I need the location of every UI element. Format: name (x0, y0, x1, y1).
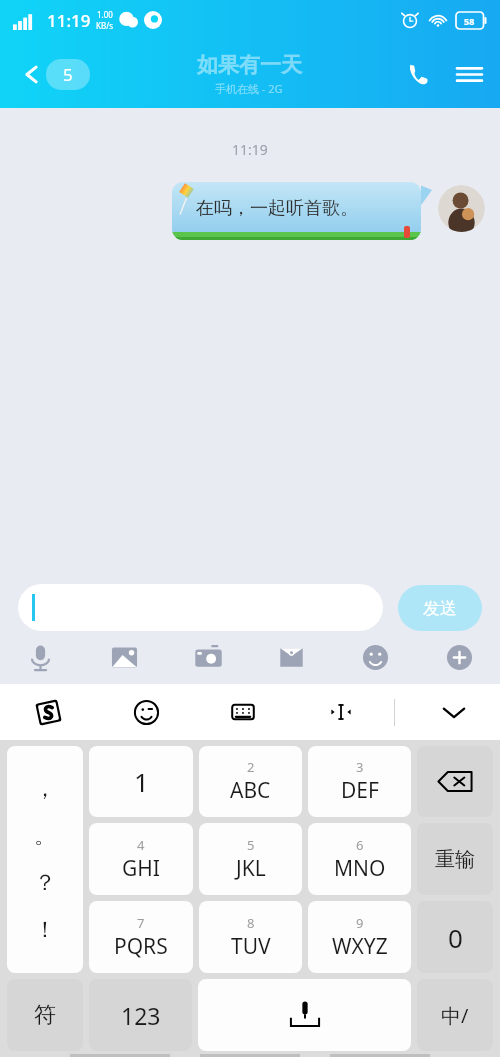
button[interactable]: 7 (89, 901, 193, 973)
button[interactable]: 发送 (398, 585, 482, 631)
staticText: 8 (247, 914, 255, 932)
staticText: DEF (341, 776, 379, 805)
staticText: 123 (121, 1000, 161, 1031)
staticText: 在吗，一起听首歌。 (196, 197, 358, 220)
button[interactable]: Voice (24, 641, 57, 674)
button[interactable]: 1 (89, 746, 193, 817)
button[interactable]: ， (7, 746, 83, 973)
staticText: 1 (134, 764, 149, 799)
staticText: 7 (137, 914, 145, 932)
staticText: MNO (334, 854, 386, 883)
button[interactable]: 9 (308, 901, 411, 973)
button[interactable]: Camera (192, 641, 225, 674)
button[interactable]: Avatar (438, 185, 485, 232)
staticText: 3 (356, 758, 364, 776)
staticText: 2 (247, 758, 255, 776)
button[interactable]: 2 (199, 746, 302, 817)
button[interactable]: Call (405, 61, 432, 88)
staticText: GHI (122, 854, 160, 883)
button[interactable] (18, 584, 383, 631)
staticText: 5 (247, 836, 255, 854)
button[interactable]: 4 (89, 823, 193, 895)
staticText: 5 (63, 63, 73, 86)
button[interactable]: 8 (199, 901, 302, 973)
button[interactable]: Gallery (108, 641, 141, 674)
staticText: ， (34, 775, 56, 803)
button[interactable]: More (443, 641, 476, 674)
staticText: ABC (230, 776, 271, 805)
staticText: 0 (448, 920, 463, 955)
staticText: 11:19 (47, 9, 91, 32)
staticText: 。 (34, 822, 56, 850)
button[interactable]: Envelope (275, 641, 308, 674)
staticText: 手机在线 - 2G (215, 81, 283, 96)
staticText: JKL (236, 854, 266, 883)
button[interactable]: Back (17, 56, 93, 93)
button[interactable]: Menu (456, 61, 483, 88)
button[interactable]: Backspace (417, 746, 493, 817)
staticText: 中/ (441, 1002, 469, 1029)
staticText: 发送 (423, 598, 457, 619)
button[interactable]: Voice input (198, 979, 411, 1051)
button[interactable]: 0 (417, 901, 493, 973)
staticText: ！ (34, 916, 56, 944)
staticText: PQRS (114, 932, 168, 961)
button[interactable]: 重输 (417, 823, 493, 895)
button[interactable]: 中/ (417, 979, 493, 1051)
staticText: 重输 (435, 847, 475, 872)
button[interactable]: 5 (199, 823, 302, 895)
staticText: 9 (356, 914, 364, 932)
button[interactable]: Hide keyboard (439, 697, 469, 727)
staticText: 如果有一天 (197, 52, 302, 78)
button[interactable]: Emoji (132, 698, 161, 727)
button[interactable]: Sogou input (33, 697, 64, 728)
staticText: 58 (464, 15, 475, 27)
staticText: WXYZ (332, 932, 388, 961)
button[interactable]: 符 (7, 979, 83, 1051)
button[interactable]: Move cursor (325, 696, 357, 728)
button[interactable]: 123 (89, 979, 192, 1051)
staticText: 6 (356, 836, 364, 854)
button[interactable]: 在吗，一起听首歌。 (172, 182, 432, 240)
staticText: 4 (137, 836, 145, 854)
staticText: ？ (34, 869, 56, 897)
staticText: 1.00 (97, 9, 113, 20)
staticText: KB/s (96, 20, 113, 31)
button[interactable]: 3 (308, 746, 411, 817)
button[interactable]: Emoji (359, 641, 392, 674)
staticText: 11:19 (232, 140, 268, 159)
staticText: TUV (231, 932, 271, 961)
button[interactable]: 6 (308, 823, 411, 895)
staticText: 符 (34, 1001, 56, 1029)
button[interactable]: Keyboard layout (228, 697, 258, 727)
